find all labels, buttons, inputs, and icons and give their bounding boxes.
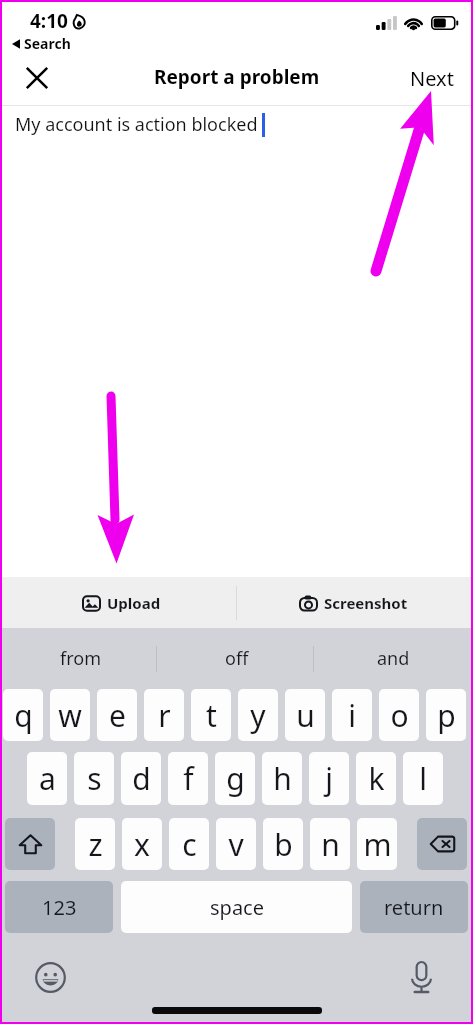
- staticText: b: [274, 824, 293, 865]
- button[interactable]: c: [169, 818, 209, 870]
- button[interactable]: Upload: [2, 577, 236, 628]
- staticText: x: [134, 824, 150, 865]
- staticText: k: [368, 758, 385, 799]
- staticText: m: [363, 824, 392, 865]
- staticText: Next: [410, 65, 454, 92]
- button[interactable]: space: [121, 881, 352, 933]
- staticText: off: [225, 646, 249, 671]
- button[interactable]: s: [74, 752, 114, 805]
- button[interactable]: v: [216, 818, 256, 870]
- button[interactable]: Dictate: [402, 958, 440, 996]
- button[interactable]: x: [122, 818, 162, 870]
- button[interactable]: return: [360, 881, 468, 933]
- staticText: f: [183, 758, 194, 799]
- button[interactable]: 123: [5, 881, 113, 933]
- button[interactable]: Screenshot: [236, 577, 471, 628]
- staticText: i: [348, 695, 356, 736]
- button[interactable]: g: [215, 752, 255, 805]
- staticText: e: [109, 695, 126, 736]
- staticText: and: [377, 646, 410, 671]
- staticText: Upload: [107, 593, 161, 613]
- staticText: t: [206, 695, 217, 736]
- button[interactable]: i: [332, 689, 372, 741]
- button[interactable]: f: [168, 752, 208, 805]
- button[interactable]: w: [50, 689, 90, 741]
- button[interactable]: from: [2, 628, 159, 689]
- button[interactable]: d: [121, 752, 161, 805]
- staticText: l: [419, 758, 427, 799]
- staticText: w: [58, 695, 82, 736]
- staticText: Report a problem: [154, 64, 320, 90]
- staticText: u: [296, 695, 315, 736]
- staticText: v: [228, 824, 244, 865]
- staticText: space: [210, 894, 264, 921]
- button[interactable]: o: [379, 689, 419, 741]
- staticText: n: [321, 824, 340, 865]
- staticText: q: [14, 695, 33, 736]
- button[interactable]: b: [263, 818, 303, 870]
- button[interactable]: r: [144, 689, 184, 741]
- staticText: Screenshot: [324, 593, 408, 613]
- staticText: h: [273, 758, 292, 799]
- staticText: z: [88, 824, 103, 865]
- button[interactable]: Shift: [5, 818, 55, 870]
- staticText: from: [60, 646, 101, 671]
- staticText: r: [158, 695, 171, 736]
- button[interactable]: off: [159, 628, 315, 689]
- button[interactable]: j: [309, 752, 349, 805]
- staticText: o: [390, 695, 409, 736]
- staticText: My account is action blocked: [15, 112, 258, 137]
- staticText: a: [39, 758, 56, 799]
- button[interactable]: e: [97, 689, 137, 741]
- button[interactable]: Next: [397, 55, 471, 105]
- button[interactable]: h: [262, 752, 302, 805]
- staticText: s: [87, 758, 102, 799]
- button[interactable]: Close: [17, 58, 57, 98]
- staticText: d: [132, 758, 151, 799]
- button[interactable]: y: [238, 689, 278, 741]
- staticText: j: [325, 758, 333, 799]
- button[interactable]: u: [285, 689, 325, 741]
- staticText: p: [437, 695, 456, 736]
- staticText: y: [250, 695, 266, 736]
- staticText: 123: [42, 894, 77, 921]
- button[interactable]: t: [191, 689, 231, 741]
- button[interactable]: l: [403, 752, 443, 805]
- staticText: Search: [24, 34, 71, 53]
- button[interactable]: m: [357, 818, 397, 870]
- button[interactable]: k: [356, 752, 396, 805]
- staticText: c: [182, 824, 197, 865]
- button[interactable]: and: [315, 628, 471, 689]
- staticText: g: [226, 758, 245, 799]
- staticText: 4:10: [30, 8, 68, 34]
- button[interactable]: p: [426, 689, 466, 741]
- button[interactable]: z: [75, 818, 115, 870]
- button[interactable]: Emoji: [31, 958, 69, 996]
- button[interactable]: a: [27, 752, 67, 805]
- button[interactable]: q: [3, 689, 43, 741]
- staticText: return: [384, 894, 444, 921]
- button[interactable]: Delete: [417, 818, 467, 870]
- button[interactable]: n: [310, 818, 350, 870]
